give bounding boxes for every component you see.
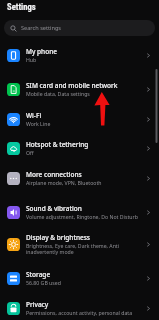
staticText: Storage [26, 270, 51, 279]
staticText: 56.80 GB used [26, 279, 61, 286]
staticText: Permissions, account activity, personal … [26, 309, 133, 316]
staticText: Display & brightness [26, 233, 91, 242]
button[interactable]: Search settings [4, 20, 155, 36]
staticText: Airplane mode, VPN, Bluetooth [26, 179, 102, 186]
staticText: Hotspot & tethering [26, 140, 89, 149]
staticText: Hub [26, 56, 37, 63]
button[interactable]: Hotspot & tethering [0, 133, 159, 163]
staticText: Mobile data, Data settings [26, 90, 90, 97]
button[interactable]: Privacy [0, 293, 159, 320]
staticText: More connections [26, 170, 82, 179]
button[interactable]: More connections [0, 163, 159, 193]
button[interactable]: Sound & vibration [0, 197, 159, 227]
button[interactable]: Storage [0, 263, 159, 293]
staticText: Brightness, Eye care, Dark theme, Anti i… [26, 242, 142, 255]
staticText: Volume adjustment, Ringtone, Do Not Dist… [26, 213, 138, 220]
staticText: Search settings [21, 24, 62, 32]
staticText: SIM card and mobile network [26, 81, 118, 90]
staticText: Privacy [26, 300, 49, 309]
staticText: Work Line [26, 120, 51, 127]
button[interactable]: Wi-Fi [0, 104, 159, 134]
staticText: Sound & vibration [26, 204, 82, 213]
button[interactable]: Display & brightness [0, 229, 159, 259]
button[interactable]: SIM card and mobile network [0, 74, 159, 104]
staticText: My phone [26, 47, 57, 56]
staticText: Off [26, 149, 34, 156]
staticText: Settings [7, 2, 36, 12]
staticText: Wi-Fi [26, 111, 42, 120]
button[interactable]: My phone [0, 40, 159, 70]
